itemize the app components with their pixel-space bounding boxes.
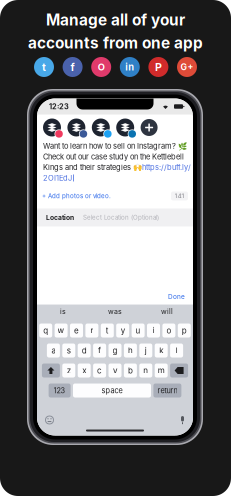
staticText: O [98, 61, 105, 73]
staticText: f [71, 60, 75, 73]
staticText: y [121, 326, 125, 335]
button[interactable]: y [116, 323, 129, 337]
button[interactable]: k [155, 343, 168, 357]
staticText: Location [46, 213, 74, 221]
staticText: G+ [180, 62, 193, 72]
button[interactable]: c [93, 363, 106, 377]
staticText: s [67, 346, 71, 355]
button[interactable]: Dictation [180, 415, 185, 424]
button[interactable]: return [153, 383, 181, 397]
staticText: o [166, 326, 171, 335]
button[interactable]: Twitter [34, 57, 54, 77]
staticText: c [97, 366, 102, 375]
staticText: Check out our case study on the Kettlebe… [43, 152, 184, 161]
button[interactable]: t [101, 323, 114, 337]
button[interactable]: Pinterest [148, 57, 168, 77]
staticText: 2OI1EdJ [43, 173, 72, 182]
staticText: + Add photos or video. [42, 192, 111, 200]
button[interactable]: space [73, 383, 151, 397]
button[interactable]: h [124, 343, 137, 357]
button[interactable]: o [162, 323, 175, 337]
button[interactable]: f [93, 343, 106, 357]
button[interactable]: n [139, 363, 152, 377]
button[interactable]: w [55, 323, 68, 337]
staticText: i [152, 326, 154, 335]
staticText: https://buff.ly/ [142, 163, 191, 172]
button[interactable]: v [108, 363, 121, 377]
button[interactable]: z [62, 363, 75, 377]
staticText: in [125, 61, 134, 73]
staticText: will [161, 307, 173, 316]
staticText: n [143, 366, 148, 375]
button[interactable]: + Add photos or video. [42, 192, 111, 200]
button[interactable]: b [124, 363, 137, 377]
button[interactable]: e [70, 323, 83, 337]
staticText: 141 [174, 192, 184, 200]
button[interactable]: l [170, 343, 183, 357]
staticText: q [43, 326, 48, 335]
staticText: Kings and their strategies 🙌 [43, 163, 142, 172]
staticText: accounts from one app [28, 34, 203, 52]
button[interactable]: Add account [141, 119, 158, 136]
button[interactable]: i [147, 323, 160, 337]
button[interactable]: LinkedIn [120, 57, 140, 77]
staticText: j [145, 346, 147, 355]
staticText: return [157, 386, 177, 395]
staticText: 12:23 [49, 102, 69, 111]
staticText: Done [168, 293, 185, 300]
staticText: t [42, 60, 46, 73]
staticText: k [159, 346, 163, 355]
staticText: r [90, 326, 93, 335]
staticText: Manage all of your [46, 11, 185, 29]
button[interactable]: Done [168, 293, 185, 300]
button[interactable]: q [39, 323, 52, 337]
button[interactable]: is [37, 304, 89, 318]
staticText: p [182, 326, 187, 335]
button[interactable]: Shift [42, 363, 60, 377]
button[interactable]: a [47, 343, 60, 357]
button[interactable]: Google Plus [177, 57, 197, 77]
button[interactable]: m [155, 363, 168, 377]
button[interactable]: s [62, 343, 75, 357]
staticText: b [128, 366, 133, 375]
button[interactable]: x [78, 363, 91, 377]
staticText: f [98, 346, 101, 355]
button[interactable]: Emoji [45, 415, 54, 424]
staticText: u [136, 326, 141, 335]
staticText: l [176, 346, 178, 355]
button[interactable]: Facebook [63, 57, 83, 77]
button[interactable]: 123 [49, 383, 71, 397]
staticText: Want to learn how to sell on Instagram? … [43, 141, 187, 151]
staticText: w [58, 326, 65, 335]
button[interactable]: p [178, 323, 191, 337]
staticText: 123 [54, 386, 66, 395]
button[interactable]: j [139, 343, 152, 357]
button[interactable]: will [141, 304, 193, 318]
staticText: space [101, 386, 122, 395]
button[interactable]: Instagram [91, 57, 111, 77]
staticText: h [128, 346, 133, 355]
staticText: z [67, 366, 71, 375]
button[interactable]: d [78, 343, 91, 357]
staticText: g [112, 346, 117, 355]
button[interactable]: r [85, 323, 98, 337]
staticText: is [60, 307, 66, 316]
button[interactable]: was [89, 304, 141, 318]
button[interactable]: Location [37, 208, 193, 226]
button[interactable]: g [108, 343, 121, 357]
staticText: Select Location (Optional) [83, 214, 159, 221]
staticText: x [82, 366, 86, 375]
staticText: a [51, 346, 55, 355]
staticText: m [158, 366, 165, 375]
staticText: d [82, 346, 87, 355]
button[interactable]: u [132, 323, 145, 337]
staticText: was [108, 307, 122, 316]
staticText: v [113, 366, 117, 375]
staticText: e [74, 326, 79, 335]
button[interactable]: Delete [170, 363, 188, 377]
staticText: t [106, 326, 109, 335]
staticText: P [155, 60, 162, 73]
